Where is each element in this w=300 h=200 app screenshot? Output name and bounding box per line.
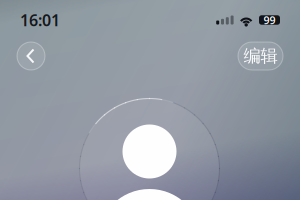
button[interactable]: Back (17, 42, 45, 70)
staticText: 编辑 (243, 45, 277, 67)
button[interactable]: 编辑 (238, 42, 283, 70)
staticText: 99 (263, 13, 275, 27)
staticText: 16:01 (20, 9, 60, 31)
